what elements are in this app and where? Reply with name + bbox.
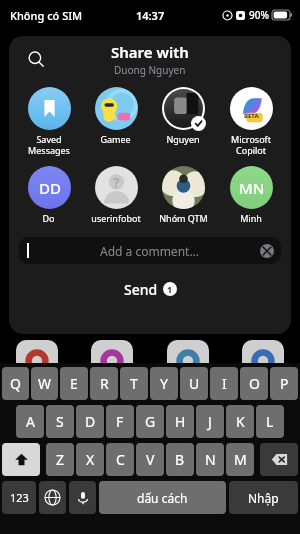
button[interactable]: App bbox=[91, 340, 133, 382]
staticText: V bbox=[146, 450, 155, 469]
button[interactable]: C bbox=[106, 443, 134, 476]
button[interactable]: T bbox=[120, 367, 148, 400]
staticText: Y bbox=[160, 374, 168, 393]
staticText: T bbox=[130, 374, 138, 393]
button[interactable]: Nhập bbox=[229, 481, 298, 514]
staticText: Nhóm QTM bbox=[159, 212, 208, 224]
staticText: Share with bbox=[111, 42, 189, 62]
button[interactable]: L bbox=[256, 405, 284, 438]
staticText: B bbox=[175, 450, 185, 469]
staticText: H bbox=[175, 412, 186, 431]
button[interactable]: A bbox=[16, 405, 44, 438]
staticText: 90% bbox=[249, 8, 269, 22]
button[interactable]: Gamee bbox=[82, 82, 149, 148]
button[interactable]: MN bbox=[217, 161, 285, 227]
staticText: M bbox=[234, 450, 247, 469]
button[interactable]: H bbox=[166, 405, 194, 438]
staticText: A bbox=[26, 412, 35, 431]
button[interactable]: Nhóm QTM bbox=[149, 161, 217, 227]
staticText: R bbox=[100, 374, 109, 393]
staticText: Duong Nguyen bbox=[114, 63, 186, 77]
staticText: N bbox=[205, 450, 216, 469]
staticText: G bbox=[145, 412, 156, 431]
button[interactable]: Dictate bbox=[69, 481, 96, 514]
button[interactable]: App bbox=[242, 340, 284, 382]
button[interactable]: 123 bbox=[2, 481, 36, 514]
staticText: Minh bbox=[240, 212, 262, 224]
staticText: O bbox=[249, 374, 260, 393]
button[interactable]: Change keyboard bbox=[39, 481, 66, 514]
button[interactable]: Clear text bbox=[260, 244, 274, 258]
staticText: U bbox=[189, 374, 200, 393]
button[interactable]: W bbox=[31, 367, 58, 400]
button[interactable]: Z bbox=[46, 443, 74, 476]
button[interactable]: F bbox=[106, 405, 134, 438]
staticText: userinfobot bbox=[91, 212, 141, 224]
button[interactable]: BETA bbox=[217, 82, 285, 159]
button[interactable]: N bbox=[196, 443, 224, 476]
staticText: D bbox=[85, 412, 96, 431]
button[interactable]: Y bbox=[150, 367, 178, 400]
staticText: Nhập bbox=[248, 490, 279, 506]
button[interactable]: Shift bbox=[2, 443, 40, 476]
button[interactable]: M bbox=[226, 443, 254, 476]
button[interactable]: ? bbox=[82, 161, 149, 227]
staticText: E bbox=[70, 374, 78, 393]
button[interactable]: D bbox=[76, 405, 104, 438]
staticText: Nguyen bbox=[166, 133, 200, 145]
button[interactable]: P bbox=[270, 367, 298, 400]
staticText: DD bbox=[39, 178, 61, 198]
staticText: 123 bbox=[10, 490, 29, 505]
staticText: Không có SIM bbox=[10, 8, 83, 23]
button[interactable]: Backspace bbox=[260, 443, 298, 476]
button[interactable]: B bbox=[166, 443, 194, 476]
staticText: X bbox=[86, 450, 95, 469]
staticText: BETA bbox=[244, 112, 259, 120]
staticText: C bbox=[116, 450, 125, 469]
button[interactable]: E bbox=[60, 367, 88, 400]
staticText: J bbox=[208, 412, 212, 431]
staticText: L bbox=[266, 412, 274, 431]
staticText: 14:37 bbox=[136, 8, 165, 23]
button[interactable]: Search bbox=[21, 44, 51, 74]
button[interactable]: Q bbox=[2, 367, 29, 400]
staticText: P bbox=[280, 374, 289, 393]
staticText: ? bbox=[113, 173, 120, 192]
staticText: I bbox=[222, 374, 227, 393]
staticText: Send bbox=[124, 280, 158, 299]
button[interactable]: O bbox=[240, 367, 268, 400]
button[interactable]: Add a comment... bbox=[19, 237, 281, 264]
staticText: dấu cách bbox=[137, 490, 188, 506]
staticText: Add a comment... bbox=[100, 243, 200, 259]
button[interactable]: K bbox=[226, 405, 254, 438]
button[interactable]: App bbox=[16, 340, 58, 382]
staticText: Z bbox=[56, 450, 65, 469]
staticText: K bbox=[236, 412, 245, 431]
staticText: Microsoft Copilot bbox=[231, 133, 271, 156]
button[interactable]: X bbox=[76, 443, 104, 476]
staticText: MN bbox=[239, 178, 265, 198]
button[interactable]: R bbox=[90, 367, 118, 400]
staticText: Do bbox=[42, 212, 55, 224]
button[interactable]: I bbox=[210, 367, 238, 400]
button[interactable]: dấu cách bbox=[99, 481, 226, 514]
staticText: Q bbox=[10, 374, 21, 393]
button[interactable]: Nguyen bbox=[149, 82, 217, 148]
button[interactable]: App bbox=[167, 340, 209, 382]
staticText: Saved Messages bbox=[28, 133, 70, 156]
button[interactable]: Saved Messages bbox=[15, 82, 82, 159]
button[interactable]: Send bbox=[9, 276, 291, 302]
staticText: F bbox=[116, 412, 124, 431]
button[interactable]: G bbox=[136, 405, 164, 438]
staticText: 1 bbox=[167, 283, 173, 295]
button[interactable]: DD bbox=[15, 161, 82, 227]
button[interactable]: S bbox=[46, 405, 74, 438]
button[interactable]: V bbox=[136, 443, 164, 476]
staticText: Gamee bbox=[100, 133, 131, 145]
button[interactable]: J bbox=[196, 405, 224, 438]
button[interactable]: U bbox=[180, 367, 208, 400]
staticText: W bbox=[38, 374, 52, 393]
staticText: S bbox=[56, 412, 64, 431]
